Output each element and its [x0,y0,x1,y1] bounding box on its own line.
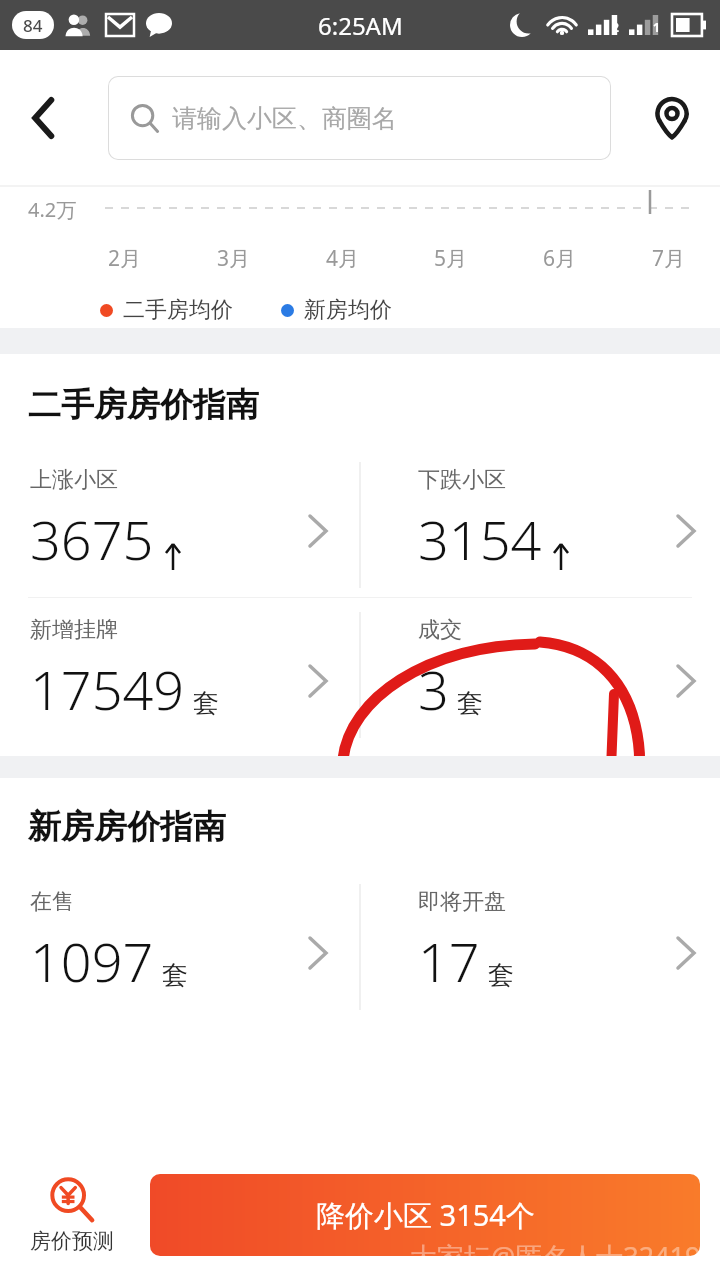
button[interactable]: 降价小区 3154个 [150,1174,700,1256]
staticText: 17549 [30,652,185,726]
staticText: 套 [193,687,219,720]
staticText: 7月 [652,244,686,273]
staticText: 2月 [108,244,142,273]
staticText: 1097 [30,924,154,998]
staticText: 成交 [418,616,462,644]
staticText: 房价预测 [30,1228,114,1254]
staticText: 84 [23,14,43,37]
staticText: 2 [612,19,619,35]
button[interactable]: 成交 [360,598,720,748]
button[interactable]: 请输入小区、商圈名 [108,76,611,160]
staticText: 二手房均价 [123,296,233,324]
staticText: 新房房价指南 [28,806,226,848]
staticText: 4.2万 [28,196,77,223]
staticText: 套 [457,687,483,720]
staticText: 1 [653,19,660,35]
staticText: 新增挂牌 [30,616,118,644]
staticText: 大家坛@匿名人士324191 [410,1238,716,1275]
staticText: 即将开盘 [418,888,506,916]
button[interactable]: 即将开盘 [360,870,720,1020]
staticText: 4月 [326,244,360,273]
staticText: 3675 [30,502,154,576]
staticText: 6月 [543,244,577,273]
button[interactable]: Back [16,90,72,146]
button[interactable]: 在售 [0,870,360,1020]
staticText: 6:25AM [318,9,403,42]
staticText: 在售 [30,888,74,916]
staticText: 3154 [418,502,542,576]
button[interactable]: Location [644,90,700,146]
button[interactable]: 上涨小区 [0,448,360,598]
staticText: 17 [418,924,480,998]
staticText: 二手房房价指南 [28,384,259,426]
staticText: 上涨小区 [30,466,118,494]
staticText: 请输入小区、商圈名 [172,103,397,134]
button[interactable]: 房价预测 [30,1176,114,1254]
staticText: 新房均价 [304,296,392,324]
staticText: 套 [162,959,188,992]
staticText: 5月 [434,244,468,273]
button[interactable]: 新增挂牌 [0,598,360,748]
button[interactable]: 下跌小区 [360,448,720,598]
staticText: 套 [488,959,514,992]
staticText: 3 [418,652,449,726]
staticText: 下跌小区 [418,466,506,494]
staticText: 降价小区 3154个 [316,1195,535,1235]
staticText: 3月 [217,244,251,273]
